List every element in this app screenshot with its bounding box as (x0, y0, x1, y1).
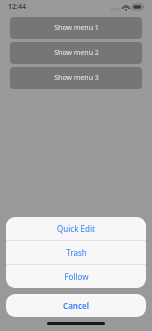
button[interactable]: Show menu 1 (10, 17, 142, 39)
staticText: Show menu 1 (54, 23, 99, 33)
button[interactable]: Cancel (6, 294, 146, 317)
button[interactable]: Show menu 2 (10, 42, 142, 64)
button[interactable]: Follow (6, 265, 146, 288)
staticText: Follow (64, 271, 89, 282)
staticText: 12:44 (8, 2, 26, 12)
button[interactable]: Trash (6, 241, 146, 264)
staticText: Cancel (63, 300, 89, 311)
staticText: Show menu 2 (54, 48, 99, 58)
staticText: Trash (66, 247, 87, 258)
staticText: Quick Edit (57, 223, 95, 234)
staticText: Show menu 3 (54, 73, 99, 83)
button[interactable]: Show menu 3 (10, 67, 142, 89)
button[interactable]: Quick Edit (6, 217, 146, 240)
